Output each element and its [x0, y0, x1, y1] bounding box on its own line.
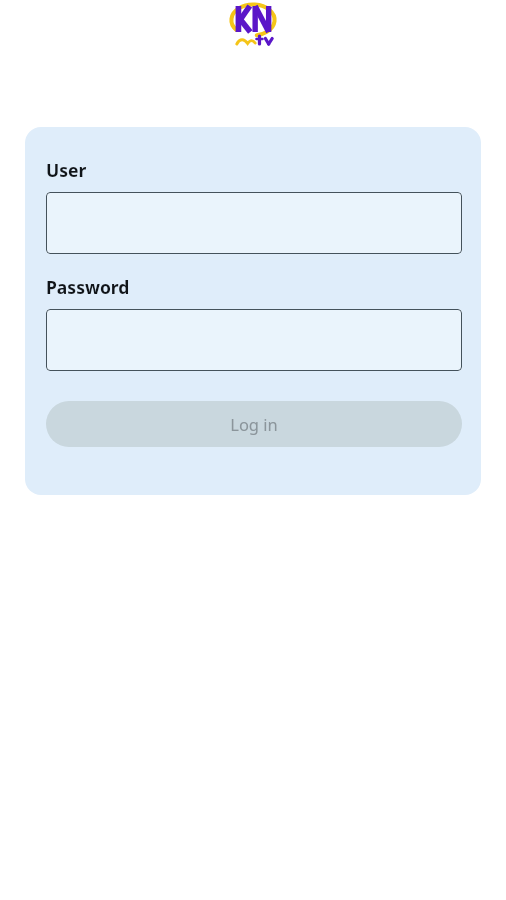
other: KN Play TV logo [226, 1, 280, 51]
button[interactable] [46, 192, 462, 254]
staticText: User [46, 158, 87, 182]
button[interactable] [46, 309, 462, 371]
button[interactable]: Log in [46, 401, 462, 447]
staticText: Password [46, 275, 130, 299]
staticText: Log in [230, 413, 278, 435]
